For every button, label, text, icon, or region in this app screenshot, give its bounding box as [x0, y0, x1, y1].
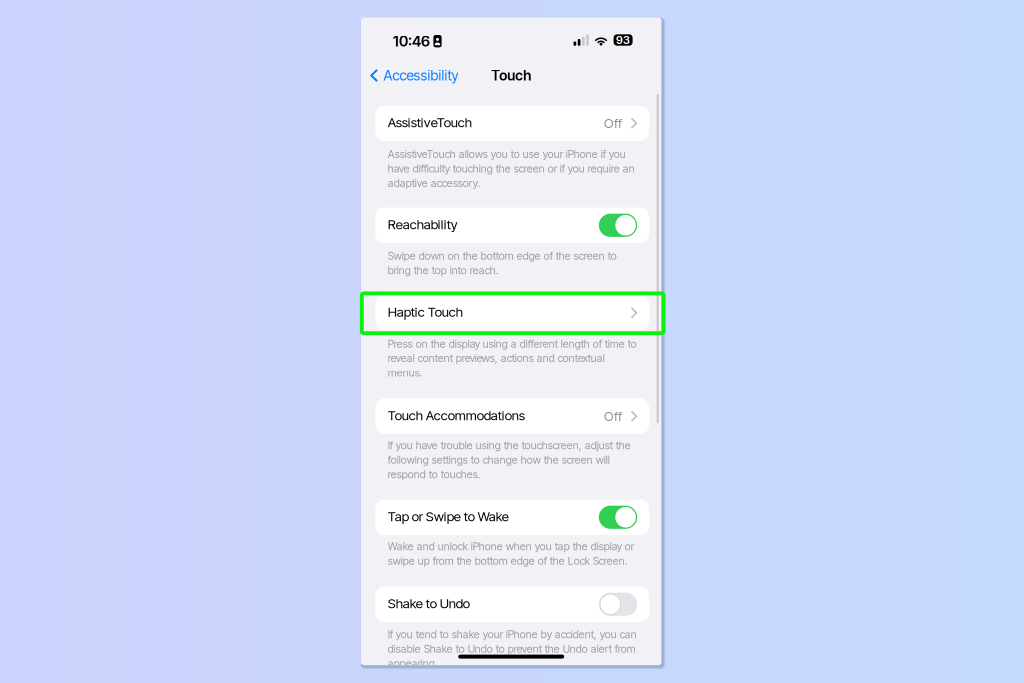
staticText: menus.	[388, 366, 423, 379]
staticText: disable Shake to Undo to prevent the Und…	[388, 642, 636, 655]
staticText: adaptive accessory.	[388, 177, 481, 189]
staticText: bring the top into reach.	[388, 264, 499, 277]
staticText: respond to touches.	[388, 468, 481, 481]
staticText: Touch	[491, 67, 531, 84]
button[interactable]: Accessibility	[365, 62, 466, 88]
staticText: 93	[616, 33, 630, 47]
staticText: Press on the display using a different l…	[388, 337, 637, 350]
button[interactable]: Haptic Touch	[375, 295, 649, 330]
staticText: If you have trouble using the touchscree…	[388, 439, 631, 452]
button[interactable]: Touch Accommodations	[375, 398, 649, 434]
button[interactable]: Reachability	[375, 207, 649, 243]
staticText: appearing.	[388, 657, 438, 670]
staticText: If you tend to shake your iPhone by acci…	[388, 628, 637, 641]
staticText: swipe up from the bottom edge of the Loc…	[388, 554, 628, 567]
button[interactable]: AssistiveTouch	[375, 105, 649, 141]
staticText: reveal content previews, actions and con…	[388, 352, 605, 365]
staticText: Touch Accommodations	[388, 407, 525, 423]
staticText: Off	[604, 408, 622, 424]
staticText: following settings to change how the scr…	[388, 453, 610, 466]
staticText: have difficulty touching the screen or i…	[388, 162, 635, 175]
staticText: Shake to Undo	[388, 595, 470, 611]
staticText: AssistiveTouch allows you to use your iP…	[388, 148, 626, 161]
button[interactable]: Shake to Undo	[375, 586, 649, 622]
staticText: Accessibility	[383, 67, 458, 84]
staticText: Haptic Touch	[388, 304, 463, 320]
staticText: Wake and unlock iPhone when you tap the …	[388, 540, 634, 553]
staticText: Reachability	[388, 216, 458, 232]
button[interactable]: Tap or Swipe to Wake	[375, 499, 649, 535]
staticText: 10:46	[393, 32, 430, 50]
staticText: Tap or Swipe to Wake	[388, 508, 509, 524]
staticText: Off	[604, 115, 622, 131]
staticText: AssistiveTouch	[388, 114, 472, 130]
staticText: Swipe down on the bottom edge of the scr…	[388, 249, 617, 262]
